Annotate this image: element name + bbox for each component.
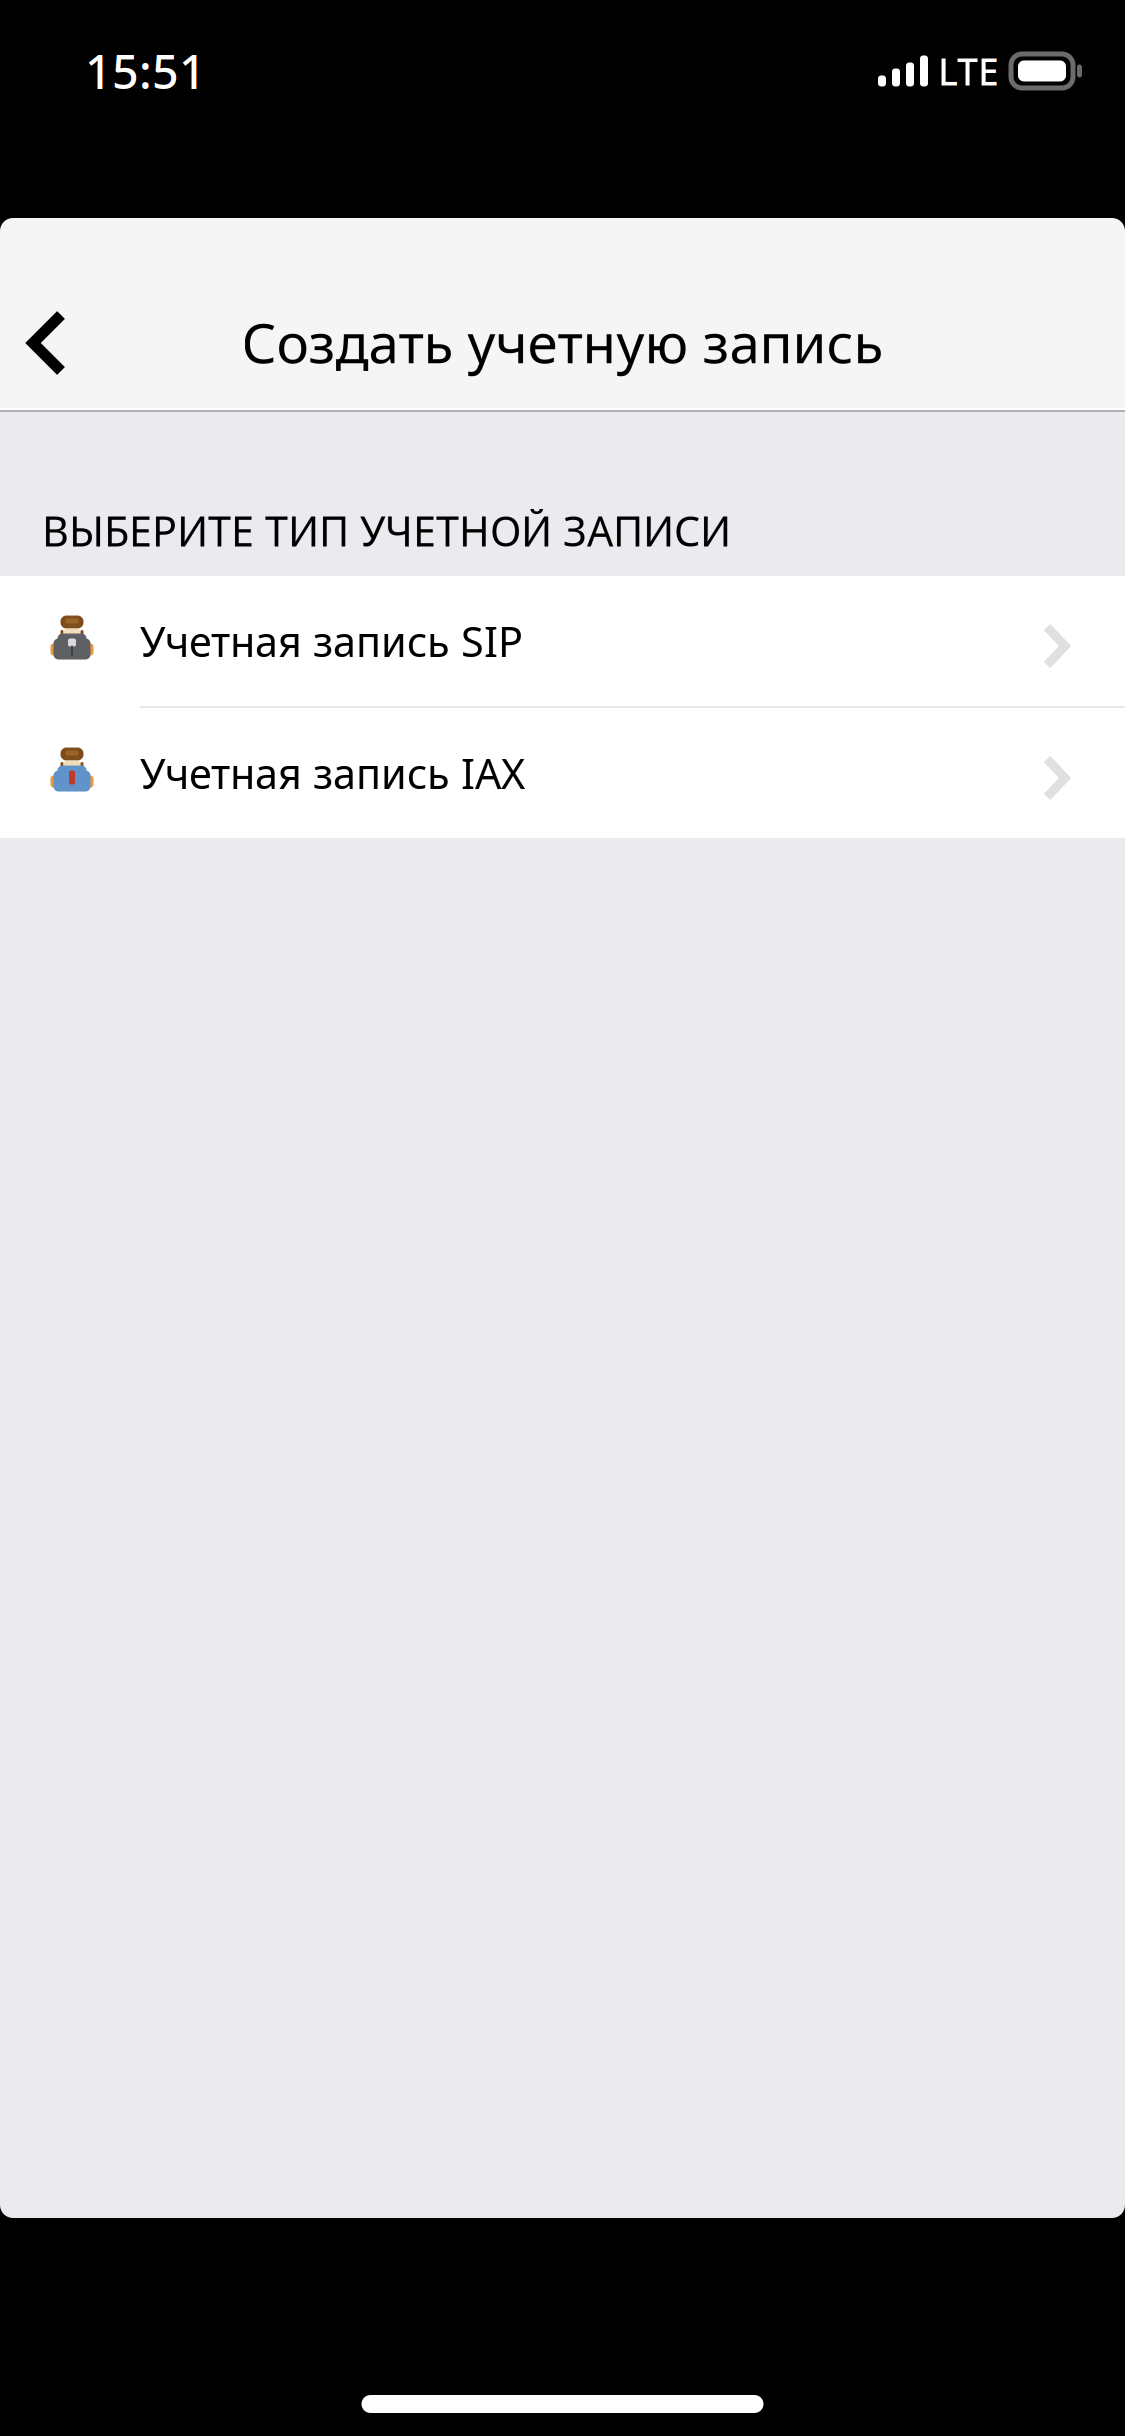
staticText: ВЫБЕРИТЕ ТИП УЧЕТНОЙ ЗАПИСИ	[42, 503, 731, 558]
staticText: 15:51	[85, 40, 206, 102]
button[interactable]: Учетная запись SIP	[0, 576, 1125, 706]
staticText: LTE	[938, 46, 999, 96]
staticText: Учетная запись SIP	[140, 614, 523, 668]
staticText: Учетная запись IAX	[140, 746, 525, 800]
staticText: Создать учетную запись	[241, 306, 883, 378]
button[interactable]: Учетная запись IAX	[0, 708, 1125, 838]
button[interactable]: Назад	[0, 276, 99, 408]
